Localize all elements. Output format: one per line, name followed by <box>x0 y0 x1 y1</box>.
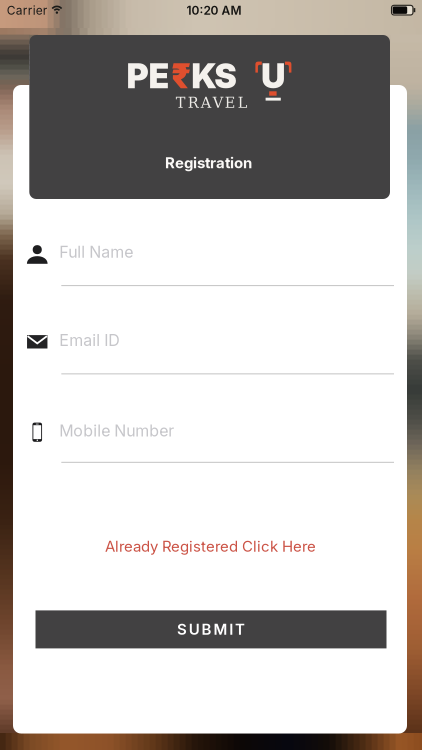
staticText: Email ID <box>59 331 119 350</box>
staticText: P <box>127 56 149 96</box>
staticText: Mobile Number <box>59 421 174 440</box>
staticText: SUBMIT <box>177 621 245 638</box>
staticText: Already Registered Click Here <box>105 537 316 555</box>
staticText: E <box>148 56 169 96</box>
button[interactable]: Already Registered Click Here <box>105 537 316 555</box>
button[interactable]: SUBMIT <box>35 610 386 648</box>
staticText: ₹ <box>171 56 191 96</box>
staticText: S <box>214 56 237 96</box>
button[interactable]: Email ID <box>26 317 394 363</box>
button[interactable]: Full Name <box>26 229 394 275</box>
staticText: TRAVEL <box>176 94 248 111</box>
staticText: K <box>191 56 217 96</box>
staticText: Registration <box>165 154 252 172</box>
staticText: U <box>261 56 286 96</box>
staticText: Carrier <box>7 3 48 17</box>
staticText: 10:20 AM <box>186 3 241 17</box>
button[interactable]: Mobile Number <box>26 408 394 454</box>
staticText: Full Name <box>59 243 133 261</box>
